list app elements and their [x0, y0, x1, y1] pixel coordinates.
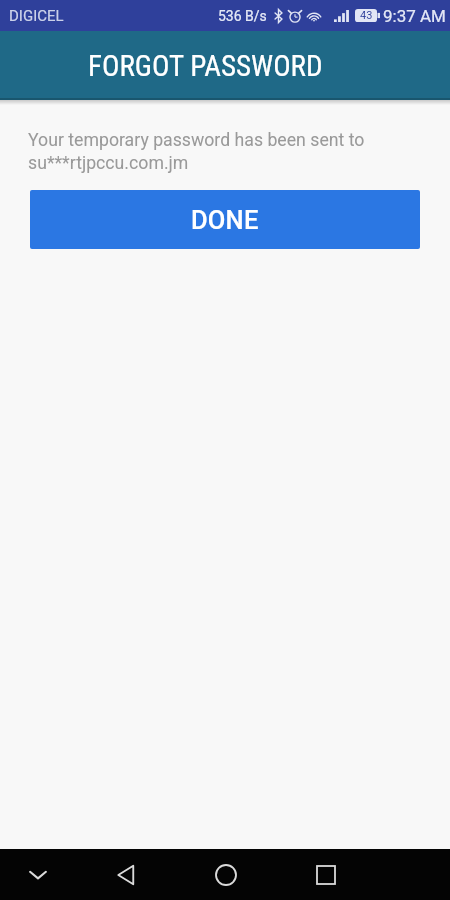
button[interactable]: Hide keyboard	[18, 855, 58, 895]
button[interactable]: DONE	[30, 190, 420, 249]
button[interactable]: Recent apps	[306, 855, 346, 895]
staticText: DIGICEL	[9, 7, 64, 25]
staticText: FORGOT PASSWORD	[88, 49, 323, 83]
staticText: 9:37 AM	[383, 6, 446, 26]
staticText: Your temporary password has been sent to…	[28, 130, 365, 173]
button[interactable]: Home	[206, 855, 246, 895]
staticText: DONE	[191, 205, 259, 235]
staticText: 536 B/s	[218, 8, 267, 24]
button[interactable]: Back	[106, 855, 146, 895]
staticText: 43	[360, 9, 373, 22]
